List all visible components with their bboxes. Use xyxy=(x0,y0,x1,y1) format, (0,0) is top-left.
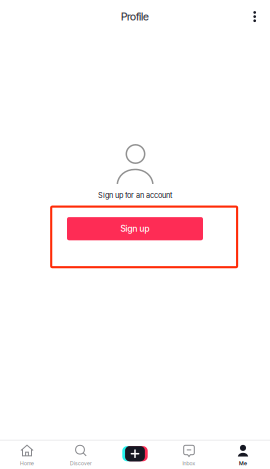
staticText: Inbox xyxy=(182,460,195,467)
staticText: Me xyxy=(239,460,247,467)
staticText: Discover xyxy=(70,460,92,467)
staticText: Profile xyxy=(121,10,149,23)
button[interactable]: Discover xyxy=(54,441,108,469)
staticText: Home xyxy=(20,460,34,467)
button[interactable]: Me xyxy=(216,441,270,469)
button[interactable]: Home xyxy=(0,441,54,469)
button[interactable]: Create xyxy=(108,441,162,469)
staticText: Sign up xyxy=(120,223,149,234)
button[interactable]: Inbox xyxy=(162,441,216,469)
button[interactable]: More options xyxy=(244,5,266,28)
staticText: Sign up for an account xyxy=(98,191,172,200)
button[interactable]: Sign up xyxy=(67,217,203,240)
